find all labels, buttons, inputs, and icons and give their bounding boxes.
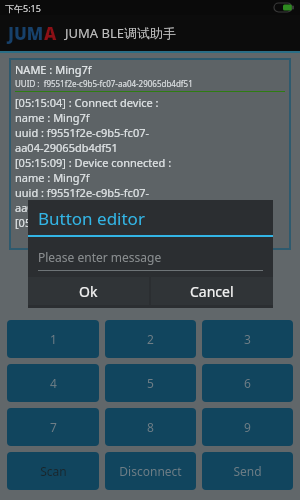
button[interactable]: Disconnect [105,452,196,490]
staticText: 7 [50,419,57,435]
staticText: 2 [147,331,154,347]
button[interactable]: 2 [105,320,196,358]
staticText: Please enter message [38,249,162,265]
button[interactable]: 8 [105,408,196,446]
staticText: [05:15:09] : Device connected : [15,155,172,170]
button[interactable]: 4 [7,364,99,402]
button[interactable]: 6 [202,364,293,402]
staticText: 8 [147,419,154,435]
staticText: Scan [40,463,67,479]
staticText: uuid : f9551f2e-c9b5-fc07- [15,185,150,200]
staticText: 9 [244,419,251,435]
staticText: 下午5:15 [5,2,41,14]
staticText: aa04-29065db4df51 [15,200,118,215]
staticText: Send [233,463,262,479]
staticText: Cancel [190,282,234,301]
button[interactable]: 3 [202,320,293,358]
staticText: 6 [244,375,251,391]
button[interactable]: Scan [7,452,99,490]
staticText: Ok [79,282,98,301]
staticText: name : Ming7f [15,170,90,185]
staticText: JUMA BLE调试助手 [65,24,177,42]
staticText: Button editor [38,207,145,230]
staticText: 3 [244,331,251,347]
staticText: A [44,22,57,45]
button[interactable]: 9 [202,408,293,446]
staticText: Disconnect [119,463,182,479]
button[interactable]: 1 [7,320,99,358]
button[interactable]: Cancel [151,277,273,305]
staticText: JUM [8,22,44,45]
button[interactable]: 5 [105,364,196,402]
staticText: [05:15:04] : Connect device : [15,95,159,110]
button[interactable]: Ok [28,277,149,305]
staticText: uuid : f9551f2e-c9b5-fc07- [15,125,150,140]
button[interactable]: 7 [7,408,99,446]
staticText: 5 [147,375,154,391]
staticText: NAME : Ming7f [15,62,92,77]
staticText: name : Ming7f [15,110,90,125]
staticText: 4 [50,375,57,391]
staticText: UUID : f9551f2e-c9b5-fc07-aa04-29065db4d… [15,78,193,89]
staticText: [05:15:10] : Ready [15,215,107,230]
staticText: aa04-29065db4df51 [15,140,118,155]
button[interactable]: Send [202,452,293,490]
staticText: 1 [50,331,57,347]
